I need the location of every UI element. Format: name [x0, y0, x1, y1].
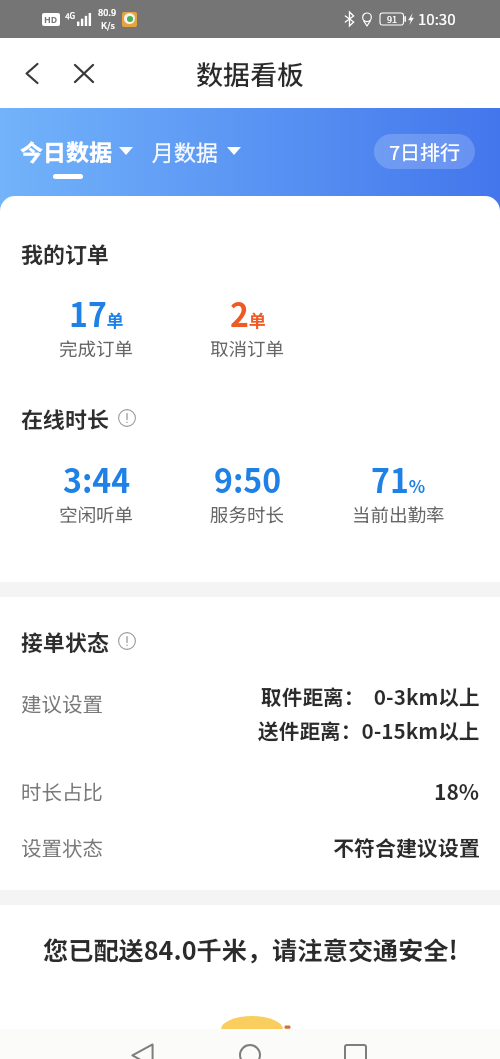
staticText: 不符合建议设置	[333, 832, 480, 862]
staticText: 完成订单	[59, 335, 134, 362]
staticText: 在线时长	[21, 402, 110, 434]
staticText: 我的订单	[21, 237, 110, 269]
staticText: 取件距离： 0-3km以上	[261, 681, 480, 711]
staticText: 时长占比	[21, 776, 103, 806]
button[interactable]: Recent apps	[336, 1029, 376, 1059]
staticText: 空闲听单	[59, 501, 134, 528]
button[interactable]: 7日排行	[374, 134, 475, 169]
staticText: 您已配送84.0千米，请注意交通安全!	[43, 931, 458, 967]
staticText: 今日数据	[20, 134, 112, 167]
staticText: 4G	[65, 10, 76, 22]
button[interactable]: Close	[61, 50, 107, 96]
staticText: 月数据	[152, 135, 219, 167]
button[interactable]: 建议设置	[0, 671, 500, 735]
button[interactable]: Back	[123, 1029, 163, 1059]
staticText: 送件距离：0-15km以上	[258, 715, 480, 745]
staticText: 71%	[371, 456, 426, 502]
staticText: 80.9	[98, 6, 117, 19]
staticText: 服务时长	[210, 501, 285, 528]
button[interactable]: 今日数据	[20, 134, 133, 179]
staticText: 建议设置	[21, 688, 103, 718]
button[interactable]: 月数据	[152, 134, 241, 167]
staticText: 2单	[230, 290, 266, 336]
staticText: 9:50	[214, 456, 282, 502]
staticText: 当前出勤率	[352, 501, 445, 528]
staticText: 设置状态	[21, 832, 103, 862]
staticText: K/s	[101, 19, 115, 32]
staticText: 7日排行	[389, 137, 461, 166]
staticText: 接单状态	[21, 625, 110, 657]
staticText: 数据看板	[196, 54, 304, 93]
button[interactable]: Back	[9, 50, 55, 96]
staticText: 取消订单	[210, 335, 285, 362]
staticText: 91	[387, 13, 397, 25]
button[interactable]: 时长占比	[0, 771, 500, 811]
staticText: HD	[44, 13, 58, 26]
staticText: 3:44	[63, 456, 131, 502]
button[interactable]: Home	[230, 1029, 270, 1059]
staticText: 10:30	[418, 8, 456, 30]
staticText: 17单	[69, 290, 124, 336]
staticText: 18%	[434, 776, 480, 806]
button[interactable]: 设置状态	[0, 827, 500, 867]
